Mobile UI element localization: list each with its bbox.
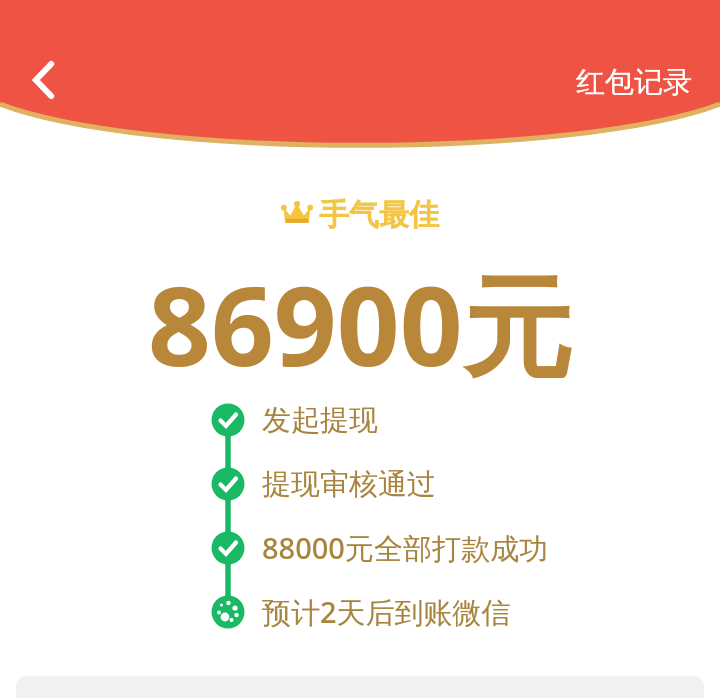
button[interactable]: 红包记录: [576, 64, 692, 101]
button[interactable]: 提现审核通过: [255, 462, 443, 506]
button[interactable]: 88000元全部打款成功: [255, 526, 555, 570]
button[interactable]: 发起提现: [255, 398, 385, 442]
button[interactable]: 预计2天后到账微信: [255, 590, 518, 634]
staticText: 86900元: [148, 248, 573, 398]
button[interactable]: Back: [18, 54, 70, 106]
staticText: 发起提现: [262, 402, 378, 439]
staticText: 提现审核通过: [262, 466, 436, 503]
staticText: 手气最佳: [319, 196, 439, 234]
staticText: 预计2天后到账微信: [262, 592, 511, 632]
staticText: 红包记录: [576, 64, 692, 101]
staticText: 88000元全部打款成功: [262, 528, 548, 568]
